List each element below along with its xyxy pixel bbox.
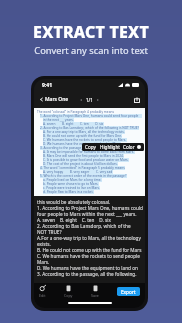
button[interactable]: Save [91,285,99,298]
staticText: C. We humans have the rockets to send pe… [43,138,127,142]
staticText: 1. According to Project Mars One, humans… [40,114,142,118]
staticText: Copy [64,293,73,298]
staticText: this would be absolutely colossal. [37,199,111,205]
staticText: Save [91,293,99,298]
staticText: NOT TRUE? [37,229,62,235]
staticText: A. seven B. eight C. ten D. six [43,122,104,126]
staticText: B. Mars One will send the first people t… [43,154,124,158]
staticText: EXTRACT TEXT [33,21,149,43]
button[interactable]: Share [132,95,141,104]
staticText: D. We humans have the equipment to land … [37,265,143,271]
staticText: A. For a one-way trip to Mars, all the t… [43,130,125,134]
staticText: c. People were trained to live on Mars. [43,186,100,190]
staticText: exists. [37,241,51,247]
staticText: 3. According to the passage, all the fol… [40,146,131,150]
staticText: d. People flew to Mars in a rocket. [43,190,94,194]
staticText: b. People were chosen to go to Mars. [43,182,99,186]
button[interactable]: Copy [85,144,96,150]
staticText: B. He could not come up with the fund fo… [37,247,143,253]
staticText: Export [121,289,136,295]
staticText: four people to Mars within the next ___ … [37,211,137,217]
staticText: The word "colossal" in Paragraph 4 proba… [37,110,114,114]
staticText: D. The cost of the project is about 6 bi… [43,162,118,166]
staticText: A. It may be impossible for humans to co… [43,150,135,154]
staticText: A. very happy B. very eager C. very sad [43,170,113,174]
staticText: 5. Which is the correct order of the eve… [40,174,127,178]
staticText: 4. The word "committed" in Paragraph 5 p… [40,166,125,170]
staticText: C. We humans have the rockets to send pe… [37,253,143,259]
button[interactable]: Back [38,96,70,103]
staticText: C. It is possible to grow food and produ… [43,158,129,162]
button[interactable]: Edit [39,285,46,298]
staticText: B. He could not come up with the fund fo… [43,134,122,138]
staticText: 2. According to Bas Lansdorp, which of t… [37,223,143,229]
staticText: Mars One [45,96,69,103]
staticText: Color [123,144,135,150]
staticText: D. We humans have the equipment to land … [43,142,121,146]
staticText: a. People lived on Mars for a long time. [43,178,102,182]
staticText: 9:41 [42,82,52,89]
staticText: 3. According to the passage, all the fol… [37,271,137,277]
staticText: A.For a one-way trip to Mars, all the te… [37,235,141,241]
staticText: Mars. [37,259,50,265]
button[interactable]: Color [123,144,141,150]
staticText: 2. According to Bas Lansdorp, which of t… [40,126,139,130]
staticText: 1/1 [86,97,93,103]
staticText: in the next ___ years. [43,118,74,122]
staticText: A. seven B. eight C. ten D. six [37,217,111,223]
other: Back [39,97,44,102]
button[interactable]: Highlight [100,144,120,150]
button[interactable]: Copy [64,285,73,298]
button[interactable]: Export [117,287,140,296]
staticText: Edit [39,293,46,298]
staticText: Convert any scan into text [34,44,148,57]
staticText: 1. According to Project Mars One, humans… [37,205,143,211]
